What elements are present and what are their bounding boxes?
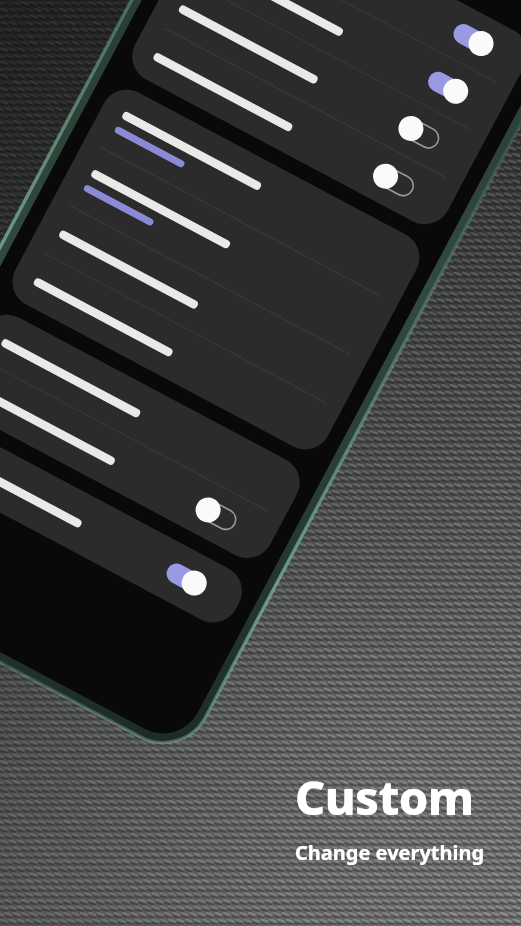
button[interactable]: Custom, change everything [295, 765, 485, 866]
staticText: Change everything [295, 839, 485, 866]
staticText: Custom [295, 765, 474, 829]
